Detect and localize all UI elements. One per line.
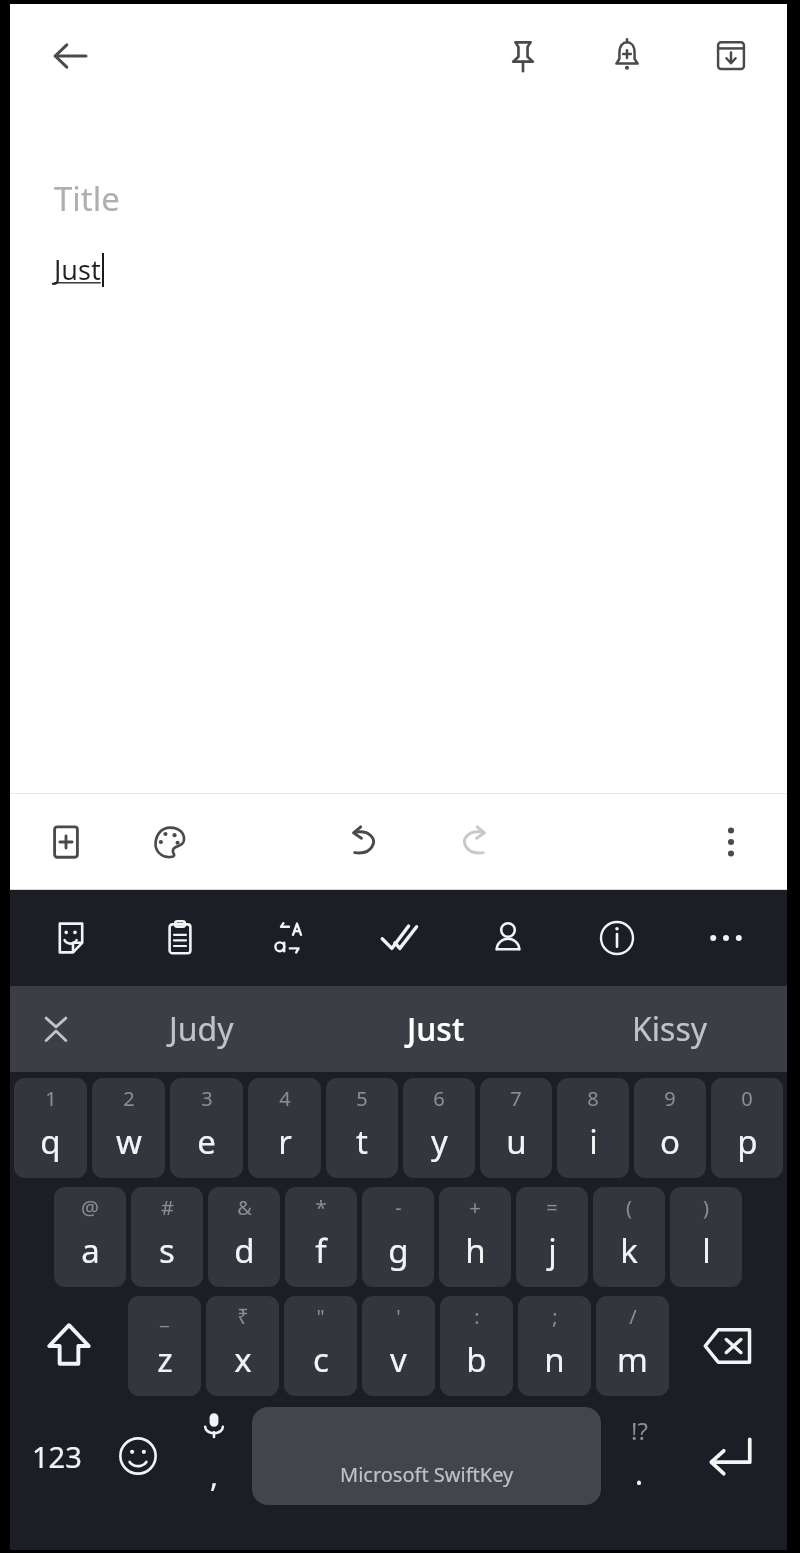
button[interactable]: Backspace bbox=[674, 1296, 783, 1396]
staticText: w bbox=[116, 1119, 142, 1164]
button[interactable]: * bbox=[285, 1187, 357, 1287]
button[interactable]: 5 bbox=[326, 1078, 398, 1178]
button[interactable]: Archive bbox=[699, 24, 763, 88]
staticText: ' bbox=[396, 1303, 401, 1330]
staticText: s bbox=[159, 1228, 175, 1273]
button[interactable]: 7 bbox=[480, 1078, 552, 1178]
button[interactable]: ( bbox=[593, 1187, 665, 1287]
button[interactable]: Clipboard bbox=[149, 907, 211, 969]
button[interactable]: Judy bbox=[84, 986, 319, 1072]
button[interactable]: / bbox=[596, 1296, 669, 1396]
button[interactable]: ) bbox=[670, 1187, 742, 1287]
staticText: 2 bbox=[123, 1085, 135, 1112]
staticText: n bbox=[544, 1337, 565, 1382]
button[interactable]: Redo bbox=[443, 810, 507, 874]
staticText: , bbox=[210, 1455, 219, 1496]
button[interactable]: 2 bbox=[92, 1078, 165, 1178]
button[interactable]: Info bbox=[586, 907, 648, 969]
staticText: Kissy bbox=[632, 1007, 708, 1051]
staticText: + bbox=[469, 1194, 481, 1221]
button[interactable]: 3 bbox=[170, 1078, 243, 1178]
staticText: g bbox=[388, 1228, 409, 1273]
staticText: m bbox=[617, 1337, 648, 1382]
button[interactable]: " bbox=[284, 1296, 357, 1396]
staticText: 4 bbox=[279, 1085, 291, 1112]
button[interactable]: Change colour bbox=[138, 810, 202, 874]
button[interactable]: Enter bbox=[677, 1404, 783, 1508]
staticText: b bbox=[466, 1337, 487, 1382]
button[interactable]: Add content bbox=[34, 810, 98, 874]
button[interactable]: 9 bbox=[634, 1078, 706, 1178]
staticText: 123 bbox=[32, 1437, 82, 1476]
staticText: z bbox=[157, 1337, 173, 1382]
button[interactable]: Voice input bbox=[176, 1404, 252, 1508]
button[interactable]: Profile bbox=[477, 907, 539, 969]
button[interactable]: More bbox=[695, 907, 757, 969]
button[interactable]: ' bbox=[362, 1296, 435, 1396]
staticText: - bbox=[395, 1194, 402, 1221]
staticText: Just bbox=[407, 1007, 465, 1051]
staticText: " bbox=[316, 1303, 325, 1330]
staticText: ) bbox=[703, 1194, 709, 1221]
staticText: c bbox=[313, 1337, 329, 1382]
staticText: Judy bbox=[169, 1007, 234, 1051]
button[interactable]: Emoji bbox=[100, 1404, 176, 1508]
staticText: . bbox=[635, 1453, 644, 1494]
staticText: 6 bbox=[433, 1085, 445, 1112]
staticText: j bbox=[548, 1228, 557, 1273]
staticText: t bbox=[356, 1119, 368, 1164]
staticText: = bbox=[546, 1194, 558, 1221]
staticText: # bbox=[161, 1194, 174, 1221]
staticText: e bbox=[197, 1119, 216, 1164]
staticText: o bbox=[660, 1119, 680, 1164]
button[interactable]: Back bbox=[38, 24, 102, 88]
button[interactable]: More options bbox=[699, 810, 763, 874]
button[interactable]: Expand suggestions bbox=[28, 1001, 84, 1057]
button[interactable]: Just bbox=[319, 986, 553, 1072]
button[interactable]: - bbox=[362, 1187, 434, 1287]
button[interactable]: 0 bbox=[711, 1078, 783, 1178]
staticText: & bbox=[237, 1194, 252, 1221]
staticText: 7 bbox=[510, 1085, 522, 1112]
button[interactable]: = bbox=[516, 1187, 588, 1287]
staticText: _ bbox=[160, 1303, 169, 1330]
staticText: / bbox=[629, 1303, 637, 1330]
button[interactable]: # bbox=[131, 1187, 203, 1287]
button[interactable]: @ bbox=[54, 1187, 126, 1287]
button[interactable]: 4 bbox=[248, 1078, 321, 1178]
staticText: 3 bbox=[201, 1085, 213, 1112]
button[interactable]: Undo bbox=[331, 810, 395, 874]
button[interactable]: 1 bbox=[14, 1078, 87, 1178]
staticText: u bbox=[506, 1119, 527, 1164]
button[interactable]: Just bbox=[10, 249, 787, 793]
staticText: : bbox=[474, 1303, 480, 1330]
button[interactable]: ₹ bbox=[206, 1296, 279, 1396]
button[interactable]: ; bbox=[518, 1296, 591, 1396]
button[interactable]: Shift bbox=[14, 1296, 123, 1396]
button[interactable]: Stickers bbox=[40, 907, 102, 969]
button[interactable]: Pin bbox=[491, 24, 555, 88]
button[interactable]: Kissy bbox=[553, 986, 787, 1072]
button[interactable]: Microsoft SwiftKey bbox=[252, 1407, 601, 1505]
button[interactable]: : bbox=[440, 1296, 513, 1396]
button[interactable]: Translate bbox=[258, 907, 320, 969]
staticText: 5 bbox=[356, 1085, 368, 1112]
staticText: a bbox=[81, 1228, 100, 1273]
button[interactable]: Add reminder bbox=[595, 24, 659, 88]
staticText: f bbox=[315, 1228, 327, 1273]
button[interactable]: 8 bbox=[557, 1078, 629, 1178]
staticText: i bbox=[589, 1119, 598, 1164]
button[interactable]: Editor bbox=[368, 907, 430, 969]
staticText: h bbox=[465, 1228, 486, 1273]
button[interactable]: Title bbox=[10, 172, 787, 225]
staticText: ( bbox=[626, 1194, 632, 1221]
button[interactable]: 6 bbox=[403, 1078, 475, 1178]
button[interactable]: + bbox=[439, 1187, 511, 1287]
staticText: x bbox=[234, 1337, 252, 1382]
button[interactable]: & bbox=[208, 1187, 280, 1287]
button[interactable]: 123 bbox=[14, 1404, 100, 1508]
button[interactable]: !? bbox=[601, 1404, 677, 1508]
button[interactable]: _ bbox=[128, 1296, 201, 1396]
staticText: ; bbox=[552, 1303, 558, 1330]
staticText: @ bbox=[81, 1194, 99, 1221]
